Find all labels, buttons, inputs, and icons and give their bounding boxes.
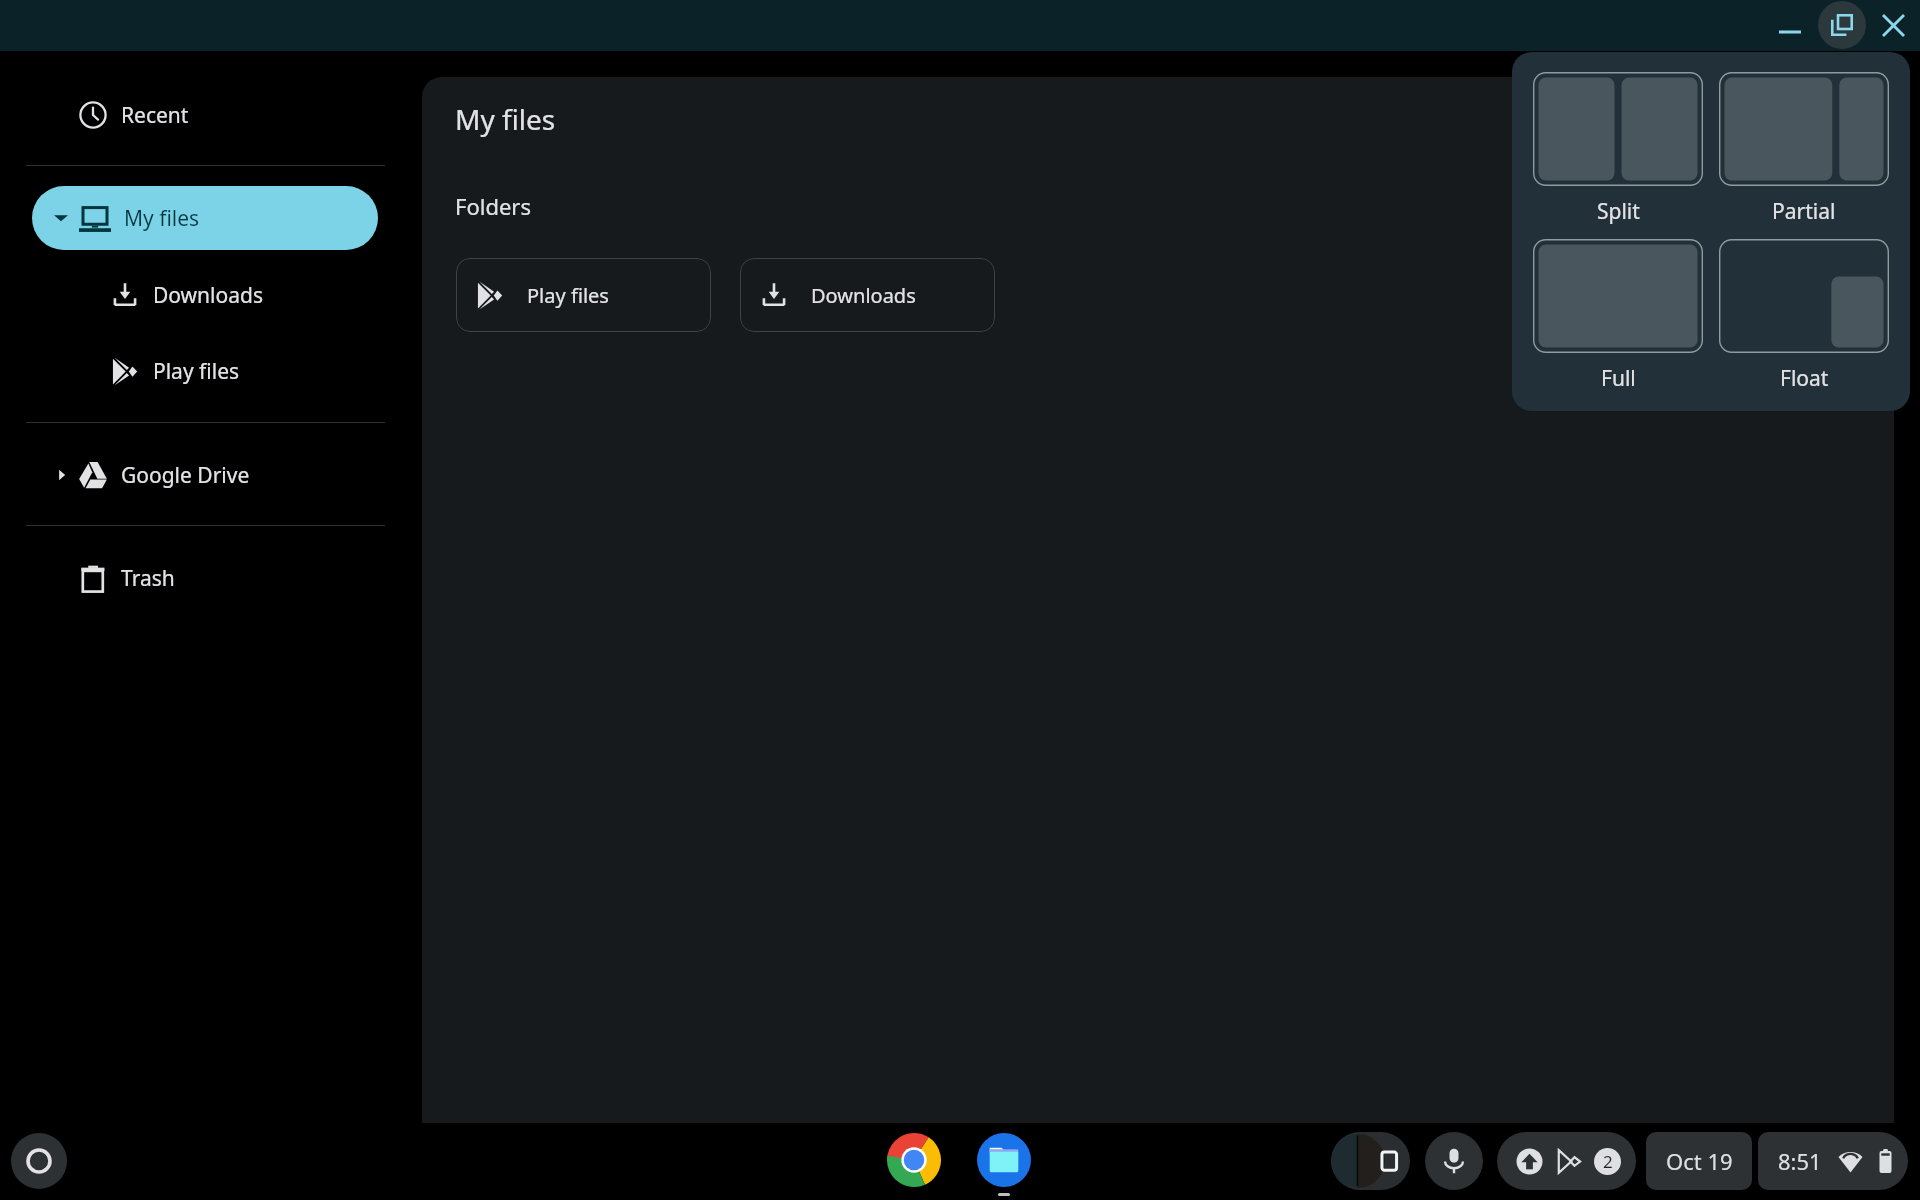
staticText: My files <box>124 204 200 233</box>
button[interactable]: Partial <box>1719 72 1889 226</box>
button[interactable]: Split <box>1533 72 1703 226</box>
button[interactable]: Downloads <box>32 267 378 323</box>
staticText: Full <box>1601 364 1636 393</box>
button[interactable]: Chrome <box>885 1131 943 1189</box>
staticText: 2 <box>1603 1150 1613 1173</box>
button[interactable]: Oct 19 <box>1646 1132 1752 1190</box>
button[interactable]: Dictation <box>1425 1132 1483 1190</box>
button[interactable]: Files <box>975 1131 1033 1189</box>
button[interactable]: 8:51 <box>1758 1132 1908 1190</box>
button[interactable]: Screen capture <box>1331 1132 1410 1190</box>
staticText: My files <box>455 100 556 138</box>
button[interactable]: Float <box>1719 239 1889 393</box>
staticText: Split <box>1597 197 1640 226</box>
button[interactable]: Full <box>1533 239 1703 393</box>
staticText: Trash <box>121 564 175 593</box>
button[interactable]: Play files <box>456 258 711 332</box>
button[interactable]: Recent <box>32 87 378 143</box>
button[interactable]: Trash <box>32 550 378 606</box>
staticText: 8:51 <box>1778 1146 1822 1176</box>
staticText: Oct 19 <box>1666 1146 1733 1176</box>
staticText: Downloads <box>153 281 263 310</box>
button[interactable]: Downloads <box>740 258 995 332</box>
button[interactable]: Minimize <box>1766 1 1814 49</box>
staticText: Play files <box>527 282 609 309</box>
button[interactable]: Play files <box>32 343 378 399</box>
button[interactable]: Maximize <box>1818 1 1866 49</box>
staticText: Google Drive <box>121 461 250 490</box>
button[interactable]: Google Drive <box>32 447 378 503</box>
button[interactable]: My files <box>32 186 378 250</box>
staticText: Play files <box>153 357 240 386</box>
staticText: Folders <box>455 191 531 221</box>
button[interactable]: Close <box>1869 1 1917 49</box>
staticText: Partial <box>1772 197 1836 226</box>
staticText: Downloads <box>811 282 916 309</box>
staticText: Float <box>1780 364 1829 393</box>
button[interactable]: Launcher <box>11 1133 67 1189</box>
button[interactable]: 2 <box>1497 1132 1636 1190</box>
staticText: Recent <box>121 101 189 130</box>
